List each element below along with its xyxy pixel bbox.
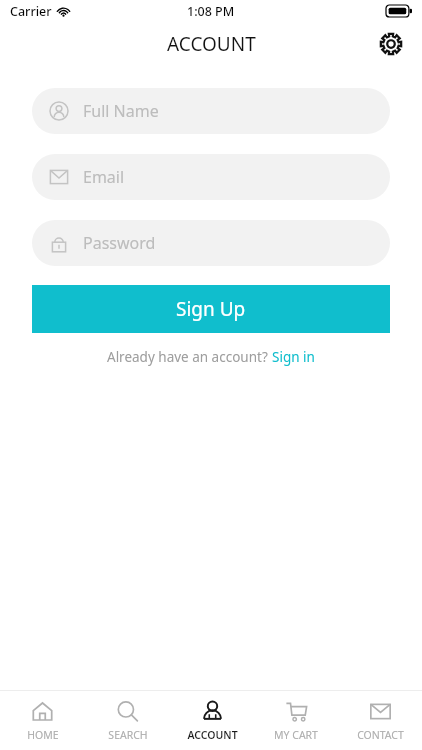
button[interactable]: Full Name [32,88,390,134]
button[interactable]: ACCOUNT [170,691,254,750]
staticText: Password [83,232,156,254]
button[interactable]: Settings [374,27,408,61]
staticText: CONTACT [357,728,404,742]
staticText: Email [83,166,125,188]
staticText: Sign in [272,348,315,366]
staticText: Sign Up [176,296,246,322]
staticText: MY CART [274,728,318,742]
staticText: ACCOUNT [187,728,238,742]
button[interactable]: SEARCH [85,691,170,750]
button[interactable]: Sign Up [32,285,390,333]
button[interactable]: HOME [0,691,85,750]
staticText: Already have an account? [107,348,272,366]
staticText: 1:08 PM [187,3,235,20]
staticText: Carrier [10,3,52,20]
button[interactable]: Sign in [272,348,315,366]
staticText: ACCOUNT [167,31,256,57]
button[interactable]: Email [32,154,390,200]
button[interactable]: MY CART [254,691,338,750]
staticText: Full Name [83,100,159,122]
button[interactable]: CONTACT [338,691,422,750]
button[interactable]: Password [32,220,390,266]
staticText: SEARCH [108,728,148,742]
staticText: HOME [27,728,59,742]
